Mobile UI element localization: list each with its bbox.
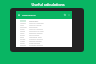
staticText: Cylinder volume (29, 38, 43, 40)
staticText: Volume (20, 26, 27, 28)
button[interactable]: Time (16, 32, 27, 34)
staticText: Length (20, 22, 26, 24)
staticText: Perimeter (29, 26, 38, 28)
staticText: Data (20, 36, 24, 38)
button[interactable]: Mass (16, 28, 27, 30)
button[interactable]: Temp (16, 34, 27, 36)
staticText: Volume of a cube (29, 30, 44, 32)
staticText: Geometry (29, 20, 39, 22)
button[interactable]: More options (68, 14, 70, 16)
button[interactable]: Pyramid volume (27, 44, 72, 46)
button[interactable]: Sphere surface (27, 40, 72, 42)
button[interactable]: Area (16, 24, 27, 26)
button[interactable]: Power (16, 38, 27, 40)
button[interactable]: Cone volume (27, 42, 72, 44)
staticText: Area of a square (29, 28, 43, 30)
button[interactable]: Circle sector (27, 34, 72, 36)
button[interactable]: Volume (16, 26, 27, 28)
button[interactable]: Search (64, 14, 66, 16)
button[interactable]: Angle (16, 40, 27, 42)
staticText: Temp (20, 34, 25, 36)
staticText: Cone volume (29, 42, 41, 44)
staticText: Calculations (22, 13, 36, 16)
staticText: Circle sector (29, 34, 40, 36)
staticText: Pyramid volume (29, 44, 43, 46)
staticText: Area (20, 24, 24, 26)
staticText: Energy (20, 44, 26, 46)
button[interactable]: Cylinder volume (27, 38, 72, 40)
staticText: Sphere surface (29, 40, 42, 42)
staticText: Force (20, 42, 25, 44)
button[interactable]: Area of a triangle (27, 22, 72, 24)
button[interactable]: Force (16, 42, 27, 44)
button[interactable]: Energy (16, 44, 27, 46)
button[interactable]: Length (16, 22, 27, 24)
staticText: Angle (20, 40, 25, 42)
staticText: Diagonal length (29, 32, 43, 34)
button[interactable]: Speed (16, 30, 27, 32)
staticText: Time (20, 32, 25, 34)
button[interactable]: Trapezoid area (27, 36, 72, 38)
staticText: Trapezoid area (29, 36, 42, 38)
staticText: Power (20, 38, 26, 40)
staticText: Area of a triangle (29, 22, 44, 24)
button[interactable]: Area of a square (27, 28, 72, 30)
staticText: Useful calculations (31, 2, 65, 7)
staticText: Speed (20, 30, 26, 32)
button[interactable]: Menu (18, 14, 20, 16)
button[interactable]: Volume of a cube (27, 30, 72, 32)
button[interactable]: Diagonal length (27, 32, 72, 34)
button[interactable]: Data (16, 36, 27, 38)
staticText: Area of a circle (29, 24, 42, 26)
staticText: Mass (20, 28, 25, 30)
button[interactable]: Area of a circle (27, 24, 72, 26)
button[interactable]: Perimeter (27, 26, 72, 28)
